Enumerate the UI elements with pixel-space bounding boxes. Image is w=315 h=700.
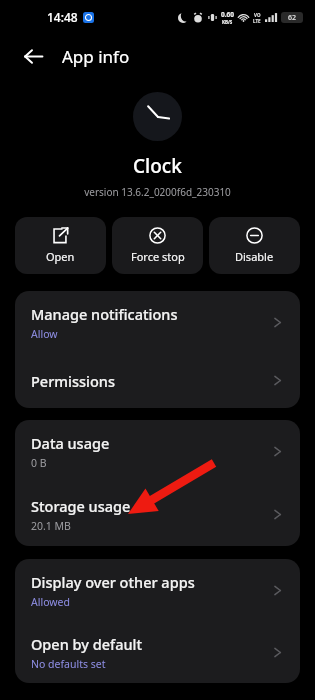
staticText: Display over other apps: [31, 572, 195, 592]
button[interactable]: Open: [15, 217, 106, 274]
staticText: 20.1 MB: [31, 519, 71, 533]
staticText: version 13.6.2_0200f6d_230310: [84, 185, 231, 199]
staticText: Disable: [235, 249, 274, 264]
staticText: 62: [288, 13, 297, 23]
button[interactable]: Manage notifications: [15, 291, 300, 353]
staticText: 14:48: [47, 9, 78, 25]
button[interactable]: Disable: [209, 217, 300, 274]
staticText: VO: [254, 12, 261, 18]
staticText: Open: [46, 249, 75, 264]
button[interactable]: Display over other apps: [15, 559, 300, 621]
staticText: 0 B: [31, 456, 47, 470]
staticText: Storage usage: [31, 496, 131, 516]
staticText: LTE: [253, 18, 261, 24]
button[interactable]: Open by default: [15, 621, 300, 683]
staticText: Permissions: [31, 371, 115, 391]
staticText: Data usage: [31, 433, 110, 453]
staticText: Open by default: [31, 634, 143, 654]
button[interactable]: Storage usage: [15, 482, 300, 546]
staticText: No defaults set: [31, 657, 106, 671]
staticText: App info: [62, 45, 130, 68]
button[interactable]: Permissions: [15, 353, 300, 408]
staticText: Manage notifications: [31, 304, 178, 324]
staticText: Clock: [133, 153, 182, 179]
button[interactable]: Data usage: [15, 420, 300, 482]
button[interactable]: Force stop: [112, 217, 203, 274]
staticText: Allow: [31, 327, 58, 341]
button[interactable]: Back: [14, 37, 52, 75]
staticText: Force stop: [131, 249, 185, 264]
staticText: Allowed: [31, 595, 70, 609]
staticText: 0.60: [221, 10, 234, 19]
staticText: KB/S: [222, 19, 233, 25]
